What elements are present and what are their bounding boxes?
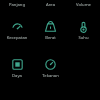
staticText: Volume [67,2,100,8]
button[interactable]: Panjang [0,2,34,8]
button[interactable]: Berat [34,20,67,41]
staticText: Berat [34,35,67,41]
button[interactable]: Daya [0,58,34,79]
button[interactable]: Kecepatan [0,20,34,41]
staticText: Tekanan [34,73,67,79]
staticText: Area [34,2,67,8]
button[interactable]: Tekanan [34,58,67,79]
staticText: Panjang [0,2,34,8]
button[interactable]: Volume [67,2,100,8]
button[interactable]: Suhu [67,20,100,41]
staticText: Suhu [67,35,100,41]
staticText: Daya [0,73,34,79]
button[interactable]: Area [34,2,67,8]
staticText: Kecepatan [0,35,34,41]
